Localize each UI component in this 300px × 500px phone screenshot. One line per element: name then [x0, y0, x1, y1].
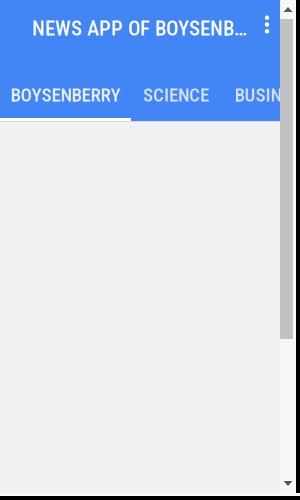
staticText: SCIENCE	[143, 84, 209, 106]
button[interactable]: Scroll down	[280, 474, 296, 493]
button[interactable]: BOYSENBERRY	[0, 57, 131, 121]
button[interactable]: SCIENCE	[131, 57, 221, 121]
staticText: BOYSENBERRY	[10, 84, 120, 106]
staticText: BUSINESS	[234, 84, 300, 106]
button[interactable]: More options	[254, 0, 280, 57]
button[interactable]: Scroll up	[280, 0, 296, 19]
staticText: NEWS APP OF BOYSENB…	[32, 16, 247, 41]
button[interactable]: BUSINESS	[221, 57, 300, 121]
